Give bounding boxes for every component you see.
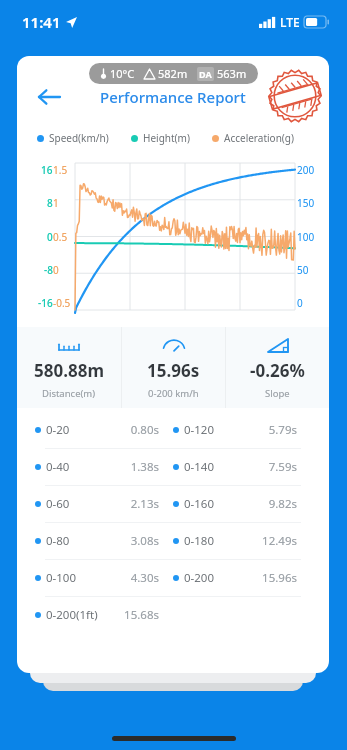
staticText: 0-140 — [184, 459, 215, 475]
button[interactable]: Valid stamp — [267, 68, 323, 124]
staticText: 582m — [158, 66, 188, 81]
staticText: 0-180 — [184, 533, 215, 549]
staticText: Height(m) — [143, 131, 190, 145]
staticText: 0-120 — [184, 422, 215, 438]
staticText: 2.13s — [70, 496, 159, 512]
staticText: Acceleration(g) — [224, 131, 294, 145]
staticText: 0 — [297, 296, 303, 310]
staticText: 0 — [53, 263, 59, 277]
button[interactable]: 0-20 — [17, 412, 329, 448]
staticText: -8 — [44, 263, 53, 277]
button[interactable]: 0-200(1ft) — [17, 597, 329, 633]
staticText: 200 — [297, 163, 315, 177]
staticText: 50 — [297, 263, 309, 277]
staticText: 0-40 — [46, 459, 70, 475]
button[interactable]: 0-100 — [17, 560, 329, 596]
staticText: 0-80 — [46, 533, 70, 549]
button[interactable]: 0-80 — [17, 523, 329, 559]
staticText: 0.80s — [70, 422, 159, 438]
staticText: 0-100 — [46, 570, 77, 586]
button[interactable]: 0-60 — [17, 486, 329, 522]
staticText: 11:41 — [22, 12, 61, 32]
staticText: 100 — [297, 230, 315, 244]
staticText: -0.26% — [250, 359, 305, 382]
staticText: 1.5 — [53, 163, 68, 177]
staticText: 16 — [41, 163, 53, 177]
staticText: 0 — [47, 230, 53, 244]
staticText: Slope — [265, 387, 290, 400]
staticText: 563m — [217, 66, 247, 81]
staticText: 15.96s — [147, 359, 200, 382]
staticText: 15.96s — [215, 570, 297, 586]
staticText: DA — [199, 68, 212, 80]
staticText: 9.82s — [215, 496, 297, 512]
staticText: -16 — [38, 296, 53, 310]
staticText: 0.5 — [53, 230, 68, 244]
staticText: 0-60 — [46, 496, 70, 512]
staticText: 3.08s — [70, 533, 159, 549]
staticText: 0-20 — [46, 422, 70, 438]
staticText: -0.5 — [53, 296, 71, 310]
staticText: 12.49s — [215, 533, 297, 549]
staticText: 8 — [47, 196, 53, 210]
staticText: 150 — [297, 196, 315, 210]
button[interactable]: 0-40 — [17, 449, 329, 485]
button[interactable]: -0.26% — [226, 327, 329, 408]
staticText: 4.30s — [77, 570, 159, 586]
staticText: 10°C — [110, 66, 135, 81]
button[interactable]: 580.88m — [17, 327, 121, 408]
staticText: 0-160 — [184, 496, 215, 512]
staticText: 7.59s — [215, 459, 297, 475]
staticText: 15.68s — [98, 607, 159, 623]
staticText: 5.79s — [215, 422, 297, 438]
staticText: 0-200(1ft) — [46, 607, 98, 623]
staticText: Speed(km/h) — [49, 131, 109, 145]
staticText: 580.88m — [34, 359, 104, 382]
button[interactable]: Back — [29, 77, 69, 117]
staticText: Distance(m) — [42, 387, 96, 400]
staticText: 0-200 km/h — [148, 387, 199, 400]
staticText: 1 — [53, 196, 59, 210]
button[interactable]: 15.96s — [122, 327, 225, 408]
button[interactable]: 10°C — [89, 63, 258, 84]
staticText: LTE — [280, 14, 300, 30]
staticText: 0-200 — [184, 570, 215, 586]
staticText: Performance Report — [100, 87, 246, 107]
staticText: 1.38s — [70, 459, 159, 475]
